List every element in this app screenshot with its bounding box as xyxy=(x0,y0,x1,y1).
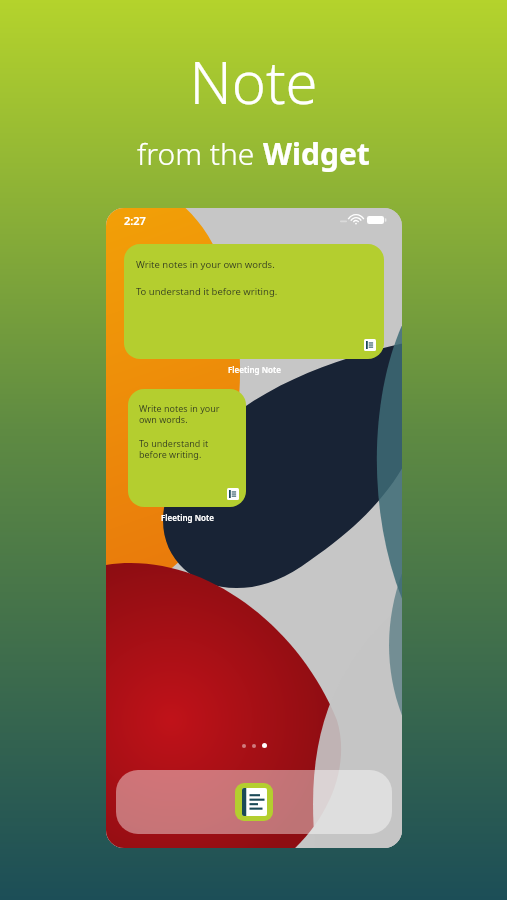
staticText: Note xyxy=(189,42,318,121)
button[interactable]: Fleeting Note xyxy=(235,783,273,821)
button[interactable]: Write notes in your own words. xyxy=(128,389,246,507)
staticText: from the xyxy=(137,133,263,174)
staticText: Write notes in your own words. xyxy=(136,258,275,271)
other: Fleeting Note app xyxy=(364,339,376,351)
staticText: Fleeting Note xyxy=(228,364,281,375)
staticText: 2:27 xyxy=(124,213,146,228)
staticText: Fleeting Note xyxy=(161,512,214,523)
button[interactable]: Write notes in your own words. xyxy=(124,244,384,359)
staticText: Widget xyxy=(263,133,370,174)
staticText: To understand it before writing. xyxy=(136,285,278,298)
staticText: Write notes in your own words. xyxy=(139,402,220,426)
other: Fleeting Note app xyxy=(227,488,239,500)
staticText: To understand it before writing. xyxy=(139,437,209,461)
